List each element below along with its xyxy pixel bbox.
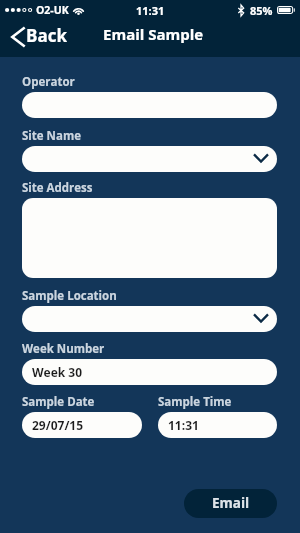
staticText: Sample Date <box>22 394 95 410</box>
button[interactable]: Operator <box>22 92 277 118</box>
staticText: Email Sample <box>103 24 204 44</box>
button[interactable]: Week Number <box>22 359 277 385</box>
button[interactable]: Site Name <box>22 146 277 172</box>
button[interactable]: Sample Time <box>158 412 277 438</box>
staticText: 29/07/15 <box>32 417 84 433</box>
staticText: Site Address <box>22 180 93 196</box>
staticText: 11:31 <box>136 3 165 18</box>
staticText: Week Number <box>22 341 105 357</box>
staticText: Operator <box>22 74 75 90</box>
staticText: Site Name <box>22 128 81 144</box>
staticText: Week 30 <box>32 364 83 380</box>
button[interactable]: Email <box>184 489 277 518</box>
staticText: Email <box>212 494 250 512</box>
staticText: O2-UK <box>36 3 69 17</box>
staticText: Back <box>26 24 67 47</box>
staticText: 85% <box>250 3 273 18</box>
button[interactable]: Site Address <box>22 198 277 278</box>
button[interactable]: Back <box>0 23 79 54</box>
staticText: Sample Time <box>158 394 232 410</box>
button[interactable]: Sample Date <box>22 412 142 438</box>
button[interactable]: Sample Location <box>22 306 277 332</box>
staticText: Sample Location <box>22 288 117 304</box>
staticText: 11:31 <box>168 417 199 433</box>
